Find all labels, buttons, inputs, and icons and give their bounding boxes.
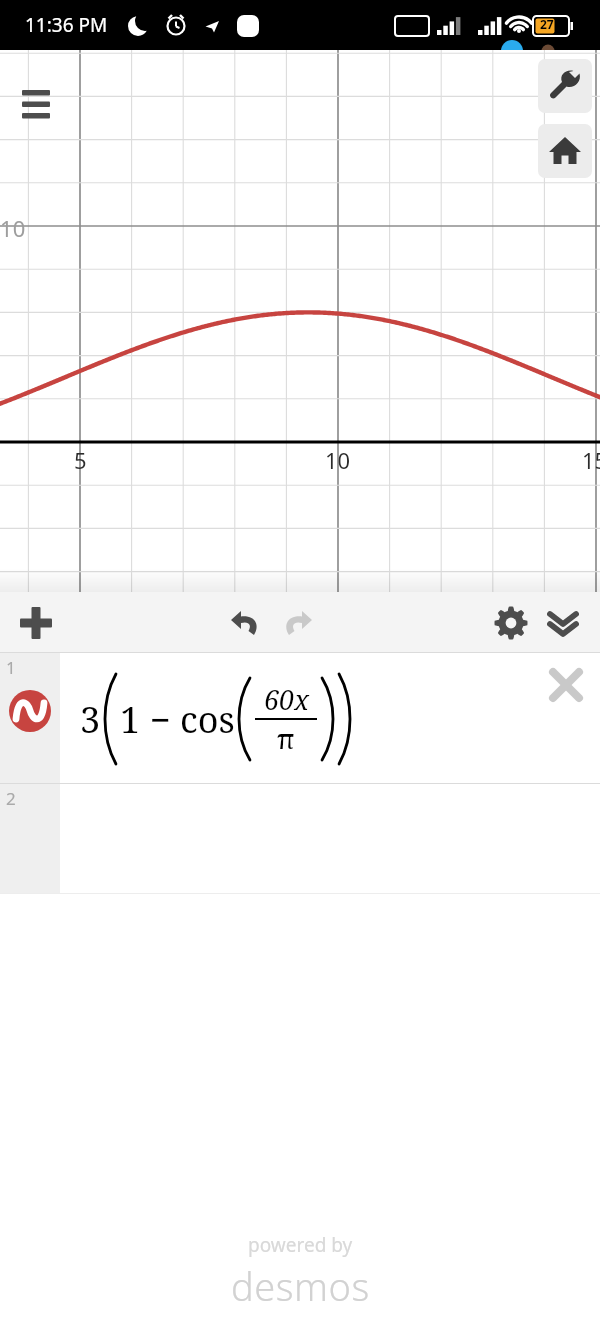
staticText: π	[277, 720, 295, 757]
staticText: 3	[80, 695, 101, 744]
button[interactable]: Undo	[219, 592, 271, 653]
button[interactable]: Menu	[12, 64, 60, 112]
staticText: -10	[0, 213, 26, 243]
staticText: 27	[540, 16, 554, 32]
staticText: 1	[6, 656, 16, 679]
staticText: powered by	[248, 1232, 353, 1258]
staticText: 2	[6, 787, 16, 810]
staticText: desmos	[231, 1260, 370, 1312]
button[interactable]: 3	[60, 653, 600, 784]
button[interactable]: Home	[538, 124, 592, 178]
staticText: cos	[180, 695, 235, 744]
button[interactable]: Settings	[538, 59, 592, 113]
button[interactable]: Delete expression	[542, 661, 590, 709]
staticText: 15	[582, 445, 600, 475]
button[interactable]: Toggle graph	[7, 688, 53, 734]
button[interactable]: Collapse	[537, 592, 589, 653]
staticText: 10	[325, 445, 351, 475]
staticText: 11:36 PM	[25, 12, 108, 38]
button[interactable]: Add expression	[10, 592, 62, 653]
staticText: −	[150, 695, 171, 744]
staticText: 5	[74, 445, 87, 475]
staticText: 1	[120, 695, 141, 744]
button[interactable]: Graph settings	[485, 592, 537, 653]
button[interactable]: Redo	[272, 592, 324, 653]
staticText: 60x	[264, 681, 309, 718]
